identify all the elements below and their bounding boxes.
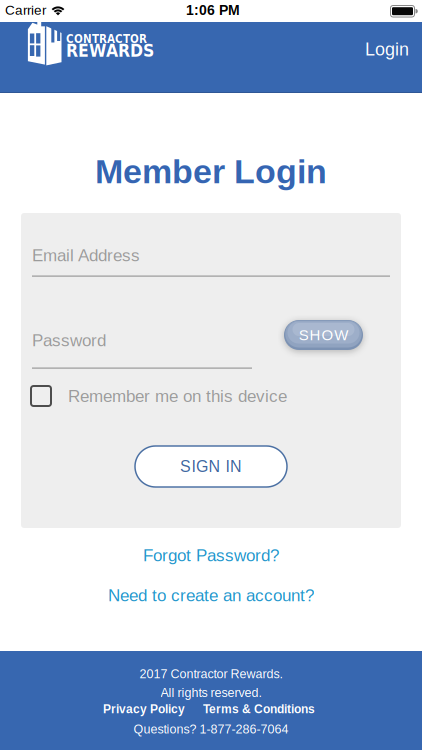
staticText: Terms & Conditions — [203, 702, 315, 716]
staticText: All rights reserved. — [160, 686, 261, 700]
staticText: Need to create an account? — [108, 586, 314, 604]
staticText: Password — [32, 331, 106, 349]
staticText: Carrier — [5, 3, 46, 18]
button[interactable]: Need to create an account? — [108, 586, 314, 604]
staticText: CONTRACTOR — [66, 32, 147, 46]
staticText: REWARDS — [66, 40, 154, 61]
staticText: Login — [365, 39, 409, 59]
staticText: 2017 Contractor Rewards. — [139, 667, 282, 681]
button[interactable]: Login — [350, 29, 422, 69]
staticText: SIGN IN — [180, 458, 242, 475]
button[interactable]: Terms & Conditions — [203, 702, 315, 716]
staticText: Member Login — [95, 153, 327, 190]
staticText: 1:06 PM — [186, 2, 240, 18]
staticText: Email Address — [32, 246, 140, 264]
button[interactable]: Forgot Password? — [143, 546, 279, 564]
staticText: Forgot Password? — [143, 546, 279, 564]
staticText: SHOW — [299, 327, 348, 343]
staticText: Questions? 1-877-286-7064 — [133, 722, 288, 736]
button[interactable]: Remember me on this device — [31, 386, 287, 406]
button[interactable]: SIGN IN — [135, 446, 287, 487]
staticText: Privacy Policy — [103, 702, 185, 716]
button[interactable]: SHOW — [284, 320, 363, 350]
button[interactable]: Privacy Policy — [103, 702, 185, 716]
staticText: Remember me on this device — [68, 387, 287, 405]
